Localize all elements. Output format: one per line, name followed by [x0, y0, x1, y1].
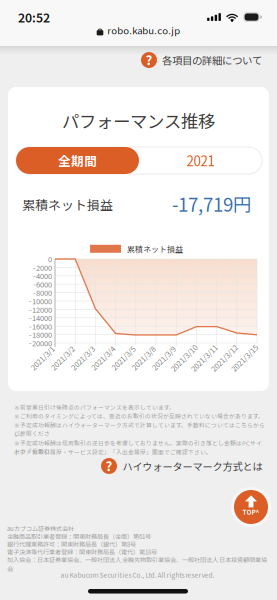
staticText: ?	[105, 456, 112, 475]
staticText: 累積ネット損益	[22, 195, 113, 214]
staticText: 2021/3/10	[167, 353, 201, 363]
staticText: ※予定成功報酬は信用取引の逆日歩を考慮しておりません。実際の引き落とし金額はPC…	[14, 439, 262, 455]
button[interactable]: 2021	[139, 147, 262, 174]
staticText: -16000	[29, 321, 52, 332]
staticText: 金融商品取引業者登録：関東財務局長（金商）第61号	[7, 532, 151, 541]
staticText: 2021/3/3	[68, 353, 98, 363]
staticText: 各項目の詳細について	[162, 52, 262, 68]
staticText: 銀行代理業務許可：関東財務局長（銀代）第8号	[7, 540, 136, 548]
staticText: ボアドお取引履歴・サービス設定」「入出金履歴」画面でご確認下さい。	[14, 448, 212, 456]
staticText: -6000	[33, 279, 52, 290]
staticText: ?	[145, 50, 152, 69]
staticText: robo.kabu.co.jp	[107, 23, 180, 37]
staticText: -17,719円	[172, 190, 252, 217]
staticText: 加入協会：日本証券業協会、一般社団法人 金融先物取引業協会、一般社団法人 日本投…	[7, 555, 267, 573]
staticText: -12000	[29, 304, 52, 315]
staticText: -14000	[29, 312, 52, 323]
staticText: 2021/3/5	[108, 353, 138, 363]
staticText: ※ご利用のタイミングによっては、直近のお取引の状況が反映されていない場合がありま…	[14, 412, 264, 420]
staticText: TOP^	[242, 507, 259, 517]
button[interactable]: ?	[141, 52, 262, 68]
staticText: -8000	[33, 287, 52, 298]
button[interactable]: Back to top	[230, 486, 272, 528]
staticText: -4000	[33, 270, 52, 281]
staticText: 0	[48, 254, 52, 264]
staticText: auカブコム証券株式会社	[7, 524, 74, 533]
staticText: 全期間	[58, 151, 97, 170]
staticText: -2000	[33, 262, 52, 273]
staticText: 2021/3/1	[27, 353, 57, 363]
staticText: 2021/3/4	[88, 353, 118, 363]
staticText: 20:52	[18, 8, 50, 26]
staticText: 電子決済等代行業者登録：関東財務局長（電代）第18号	[7, 547, 157, 556]
staticText: 2021	[186, 151, 214, 170]
staticText: い。	[14, 430, 26, 438]
staticText: ※前営業日引け後時点のパフォーマンスを表示しています。	[14, 403, 175, 411]
button[interactable]: ?	[101, 458, 262, 474]
staticText: 2021/3/8	[128, 353, 158, 363]
staticText: 2021/3/9	[149, 353, 179, 363]
staticText: 2021/3/12	[207, 353, 241, 363]
staticText: 累積ネット損益	[127, 243, 183, 255]
staticText: 2021/3/15	[227, 353, 261, 363]
staticText: 2021/3/11	[187, 353, 221, 363]
staticText: -10000	[29, 296, 52, 306]
button[interactable]: 全期間	[16, 147, 139, 174]
staticText: パフォーマンス推移	[62, 108, 215, 133]
staticText: ハイウォーターマーク方式とは	[122, 459, 262, 473]
staticText: au Kabucom Securities Co., Ltd. All righ…	[60, 570, 214, 580]
staticText: -18000	[29, 329, 52, 340]
staticText: ※予定成功報酬はハイウォーターマーク方式で計算しています。手数料についてはこちら…	[14, 421, 265, 437]
staticText: -20000	[29, 338, 52, 348]
staticText: 2021/3/2	[48, 353, 78, 363]
